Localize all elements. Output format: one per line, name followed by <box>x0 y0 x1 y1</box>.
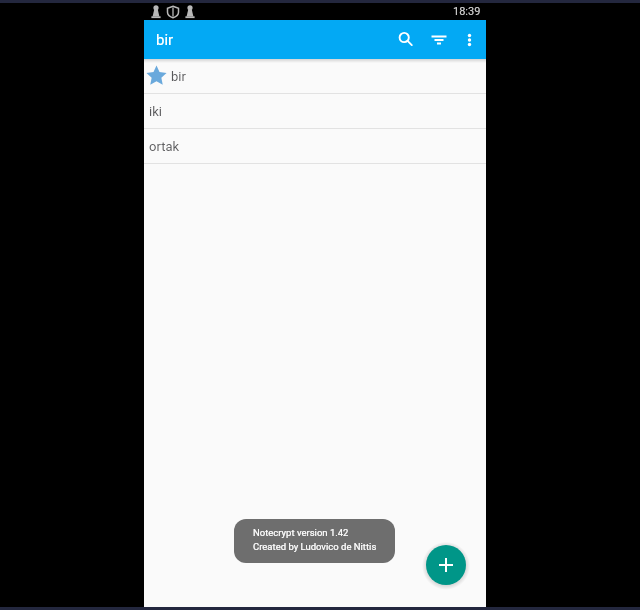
staticText: bir <box>171 69 186 84</box>
button[interactable] <box>392 26 420 54</box>
button[interactable]: ortak <box>144 129 486 163</box>
button[interactable] <box>426 545 466 585</box>
button[interactable]: iki <box>144 94 486 128</box>
button[interactable] <box>458 26 480 54</box>
staticText: ortak <box>149 139 180 154</box>
staticText: Created by Ludovico de Nittis <box>253 541 377 552</box>
staticText: iki <box>149 104 162 119</box>
button[interactable] <box>426 26 452 54</box>
staticText: bir <box>156 31 174 49</box>
staticText: 18:39 <box>453 5 481 18</box>
button[interactable]: bir <box>144 59 486 93</box>
staticText: Notecrypt version 1.42 <box>253 527 349 538</box>
